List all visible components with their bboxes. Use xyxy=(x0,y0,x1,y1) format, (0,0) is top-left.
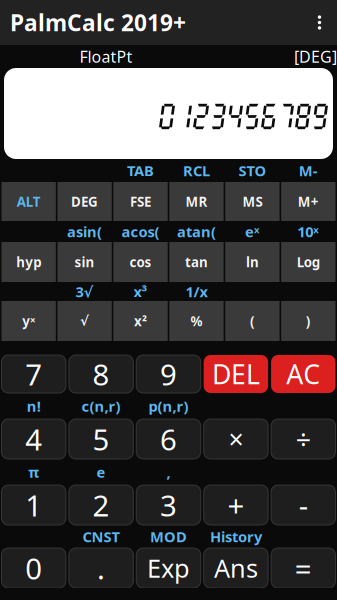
button[interactable]: yˣ xyxy=(1,301,56,341)
staticText: acos( xyxy=(121,222,159,241)
button[interactable]: tan xyxy=(169,242,224,282)
staticText: TAB xyxy=(127,161,154,180)
button[interactable]: 3 xyxy=(136,485,201,525)
button[interactable]: × xyxy=(204,419,268,459)
staticText: . xyxy=(97,548,105,587)
button[interactable]: √ xyxy=(57,301,112,341)
staticText: FSE xyxy=(130,193,151,210)
button[interactable]: ) xyxy=(281,301,335,341)
staticText: 2 xyxy=(93,485,110,524)
staticText: atan( xyxy=(177,222,216,241)
button[interactable]: % xyxy=(169,301,224,341)
staticText: eˣ xyxy=(245,222,260,241)
button[interactable]: cos xyxy=(113,242,168,282)
button[interactable]: ln xyxy=(225,242,279,282)
button[interactable]: . xyxy=(69,548,133,588)
staticText: ) xyxy=(306,312,311,330)
staticText: ln xyxy=(246,253,259,271)
staticText: FloatPt xyxy=(79,46,132,67)
button[interactable]: x² xyxy=(113,301,168,341)
staticText: x³ xyxy=(133,282,147,301)
button[interactable]: Ans xyxy=(204,548,268,588)
button[interactable]: DEL xyxy=(204,355,268,393)
button[interactable]: ÷ xyxy=(271,419,335,459)
staticText: ALT xyxy=(17,193,41,210)
button[interactable]: DEG xyxy=(57,182,112,221)
staticText: Exp xyxy=(147,551,190,585)
staticText: MS xyxy=(242,193,262,210)
button[interactable]: hyp xyxy=(1,242,56,282)
button[interactable]: ( xyxy=(225,301,279,341)
staticText: 5 xyxy=(93,419,110,458)
button[interactable]: 2 xyxy=(69,485,133,525)
staticText: 1/x xyxy=(185,282,207,301)
staticText: DEG xyxy=(71,193,98,210)
button[interactable]: 8 xyxy=(69,355,133,393)
button[interactable]: MS xyxy=(225,182,279,221)
staticText: PalmCalc 2019+ xyxy=(10,7,186,37)
button[interactable]: 6 xyxy=(136,419,201,459)
staticText: 4 xyxy=(25,419,42,458)
staticText: cos xyxy=(129,253,151,271)
button[interactable]: 0 xyxy=(1,548,66,588)
button[interactable]: AC xyxy=(271,355,335,393)
button[interactable]: 5 xyxy=(69,419,133,459)
staticText: AC xyxy=(286,356,320,392)
button[interactable]: 7 xyxy=(1,355,66,393)
button[interactable]: More options xyxy=(302,0,337,45)
staticText: [DEG] xyxy=(294,46,337,67)
staticText: MOD xyxy=(150,527,187,546)
staticText: ÷ xyxy=(296,421,311,457)
staticText: c(n,r) xyxy=(82,396,121,416)
button[interactable]: + xyxy=(204,485,268,525)
staticText: 3 xyxy=(160,485,177,524)
staticText: 6 xyxy=(160,419,177,458)
staticText: 3√ xyxy=(76,282,94,301)
staticText: asin( xyxy=(67,222,102,241)
staticText: History xyxy=(210,527,262,546)
button[interactable]: sin xyxy=(57,242,112,282)
staticText: = xyxy=(295,548,312,587)
button[interactable]: MR xyxy=(169,182,224,221)
staticText: % xyxy=(190,312,202,330)
staticText: ( xyxy=(250,312,255,330)
staticText: DEL xyxy=(212,356,260,392)
staticText: × xyxy=(228,421,243,457)
staticText: MR xyxy=(185,193,207,210)
staticText: 9 xyxy=(160,354,177,393)
staticText: + xyxy=(227,485,244,524)
staticText: RCL xyxy=(183,161,210,180)
staticText: 1 xyxy=(25,485,42,524)
button[interactable]: Exp xyxy=(136,548,201,588)
staticText: n! xyxy=(27,396,41,416)
staticText: , xyxy=(166,462,170,482)
staticText: e xyxy=(97,462,106,482)
staticText: 7 xyxy=(25,354,42,393)
button[interactable]: - xyxy=(271,485,335,525)
staticText: Ans xyxy=(214,551,258,585)
staticText: yˣ xyxy=(22,312,35,330)
staticText: STO xyxy=(238,161,266,180)
staticText: π xyxy=(28,462,39,482)
staticText: 10ˣ xyxy=(297,222,319,241)
staticText: 8 xyxy=(93,354,110,393)
button[interactable]: 1 xyxy=(1,485,66,525)
staticText: M+ xyxy=(298,193,319,210)
staticText: M- xyxy=(299,161,318,180)
button[interactable]: 4 xyxy=(1,419,66,459)
staticText: 0 xyxy=(25,548,42,587)
staticText: p(n,r) xyxy=(148,396,188,416)
button[interactable]: FSE xyxy=(113,182,168,221)
staticText: hyp xyxy=(16,253,41,271)
button[interactable]: M+ xyxy=(281,182,335,221)
button[interactable]: = xyxy=(271,548,335,588)
staticText: CNST xyxy=(83,527,120,546)
button[interactable]: Log xyxy=(281,242,335,282)
button[interactable]: ALT xyxy=(1,182,56,221)
staticText: Log xyxy=(297,253,320,271)
button[interactable]: 9 xyxy=(136,355,201,393)
staticText: - xyxy=(299,485,308,524)
staticText: tan xyxy=(185,253,208,271)
staticText: √ xyxy=(80,313,89,328)
staticText: x² xyxy=(134,312,147,330)
